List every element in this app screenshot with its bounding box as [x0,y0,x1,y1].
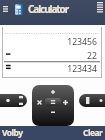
staticText: 22 [2,50,97,62]
button[interactable]: Clear [52,126,105,140]
button[interactable]: Navigation key [32,85,74,126]
staticText: Calculator [28,2,69,16]
staticText: Volby [2,127,23,139]
staticText: 123456 [2,36,97,48]
button[interactable]: Volby [0,126,52,140]
button[interactable]: Clear key [79,94,105,107]
staticText: 123434 [2,63,97,75]
button[interactable]: Left soft key [0,94,27,107]
staticText: Clear [83,127,103,139]
